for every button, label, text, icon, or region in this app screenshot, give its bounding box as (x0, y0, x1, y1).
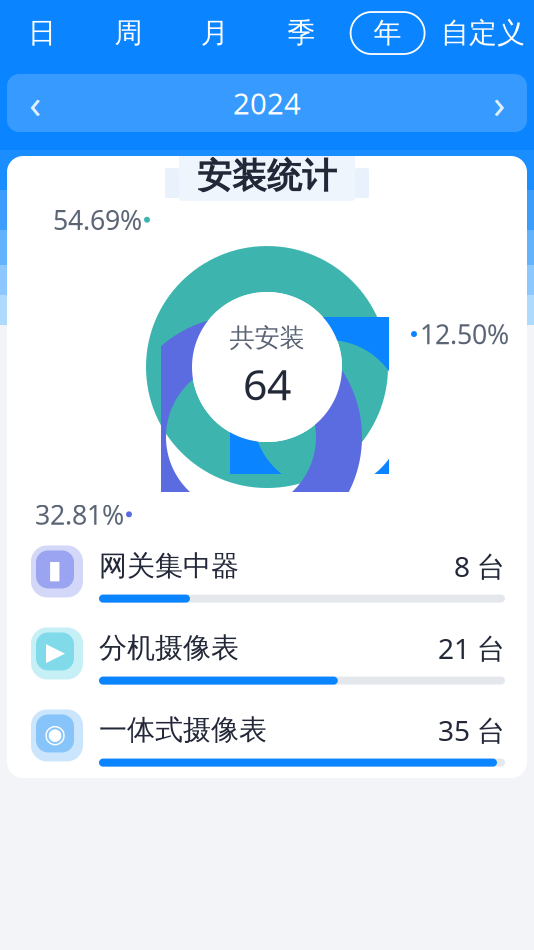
button[interactable]: 周 (91, 12, 165, 54)
staticText: › (493, 76, 505, 130)
button[interactable]: 上一年 (7, 75, 63, 131)
staticText: 日 (28, 16, 56, 50)
staticText: 网关集中器 (99, 549, 239, 583)
staticText: ▶ (45, 637, 64, 666)
button[interactable]: 下一年 (471, 75, 527, 131)
staticText: 64 (243, 355, 291, 412)
staticText: 21 台 (438, 629, 505, 667)
staticText: 分机摄像表 (99, 631, 239, 665)
button[interactable]: ▮ (7, 532, 527, 614)
staticText: 季 (287, 16, 315, 50)
staticText: 54.69% (53, 202, 142, 237)
staticText: 12.50% (420, 316, 509, 352)
staticText: 35 台 (438, 711, 505, 749)
staticText: 共安装 (229, 322, 304, 353)
button[interactable]: 月 (178, 12, 252, 54)
staticText: 年 (374, 16, 402, 50)
staticText: ▮ (48, 555, 62, 584)
staticText: 32.81% (35, 497, 124, 532)
staticText: 8 台 (454, 547, 505, 585)
button[interactable]: 自定义 (437, 12, 529, 54)
button[interactable]: 季 (264, 12, 338, 54)
button[interactable]: ◉ (7, 696, 527, 778)
button[interactable]: ▶ (7, 614, 527, 696)
staticText: 一体式摄像表 (99, 713, 267, 747)
staticText: 周 (114, 16, 142, 50)
staticText: 2024 (233, 84, 301, 123)
button[interactable]: 年 (351, 12, 425, 54)
staticText: ◉ (44, 719, 66, 748)
staticText: 安装统计 (197, 155, 337, 197)
staticText: ‹ (29, 76, 41, 130)
staticText: 自定义 (441, 16, 525, 50)
staticText: 月 (201, 16, 229, 50)
button[interactable]: 日 (5, 12, 79, 54)
